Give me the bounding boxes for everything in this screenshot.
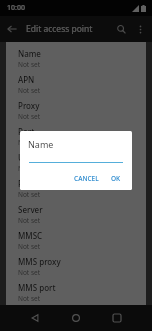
staticText: Server xyxy=(18,204,43,215)
staticText: MMS port xyxy=(18,282,56,293)
staticText: Password xyxy=(18,178,55,189)
staticText: Edit access point xyxy=(26,23,93,35)
staticText: Not set xyxy=(18,190,41,199)
button[interactable]: Search xyxy=(110,18,132,40)
button[interactable]: Server xyxy=(6,200,146,226)
staticText: Not set xyxy=(18,216,41,225)
button[interactable]: Port xyxy=(6,122,146,148)
staticText: OK xyxy=(111,174,121,183)
button[interactable]: Username xyxy=(6,148,146,174)
staticText: Not set xyxy=(18,294,41,303)
button[interactable]: Back xyxy=(26,309,44,327)
staticText: Name xyxy=(28,138,54,150)
staticText: Not set xyxy=(18,268,41,277)
staticText: Not set xyxy=(18,138,41,147)
staticText: Port xyxy=(18,126,35,137)
staticText: MMSC xyxy=(18,230,43,241)
staticText: Not set xyxy=(18,164,41,173)
button[interactable]: APN xyxy=(6,70,146,96)
button[interactable]: More options xyxy=(132,19,149,39)
button[interactable]: Proxy xyxy=(6,96,146,122)
button[interactable]: OK xyxy=(108,172,124,185)
button[interactable]: Home xyxy=(67,309,85,327)
staticText: Name xyxy=(18,48,41,59)
button[interactable]: Navigate up xyxy=(0,17,24,41)
button[interactable]: MMSC xyxy=(6,226,146,252)
staticText: Not set xyxy=(18,112,41,121)
button[interactable]: CANCEL xyxy=(71,172,102,185)
staticText: 10:00 xyxy=(7,3,25,13)
staticText: APN xyxy=(18,74,35,85)
staticText: Not set xyxy=(18,242,41,251)
button[interactable]: Name xyxy=(6,44,146,70)
button[interactable]: Password xyxy=(6,174,146,200)
staticText: Not set xyxy=(18,60,41,69)
button[interactable]: Recent apps xyxy=(108,309,126,327)
staticText: Proxy xyxy=(18,100,40,111)
staticText: CANCEL xyxy=(74,174,99,183)
button[interactable]: MMS port xyxy=(6,278,146,304)
button[interactable]: MMS proxy xyxy=(6,252,146,278)
staticText: MMS proxy xyxy=(18,256,61,267)
staticText: Username xyxy=(18,152,58,163)
staticText: Not set xyxy=(18,86,41,95)
